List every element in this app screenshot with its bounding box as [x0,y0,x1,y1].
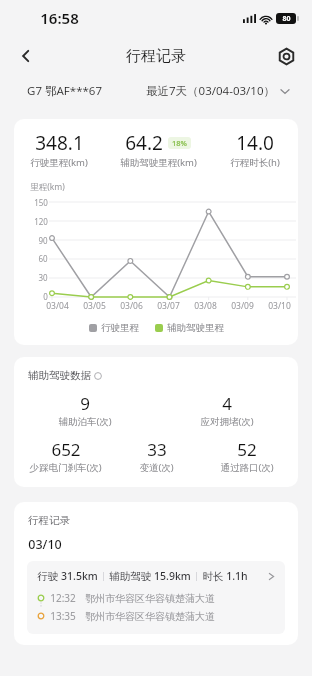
staticText: 30 [38,272,48,283]
staticText: 33 [147,438,167,461]
staticText: 辅助泊车(次) [58,415,112,428]
staticText: 03/09 [231,300,254,312]
button[interactable]: 最近7天（03/04-03/10） [146,83,290,99]
button[interactable]: Back [8,38,44,74]
staticText: 150 [34,197,48,208]
staticText: 60 [38,253,48,264]
staticText: 03/07 [157,300,180,312]
staticText: 03/10 [28,536,62,553]
staticText: 行驶 31.5km [37,569,98,583]
staticText: 最近7天（03/04-03/10） [146,83,275,99]
staticText: 里程(km) [30,181,65,193]
staticText: 0 [43,291,48,302]
staticText: 64.2 [125,130,163,156]
staticText: 时长 1.1h [202,569,248,583]
staticText: 52 [237,438,257,461]
staticText: 03/08 [194,300,217,312]
staticText: 变道(次) [139,461,174,474]
staticText: 鄂州市华容区华容镇楚蒲大道 [85,592,215,605]
staticText: 通过路口(次) [220,461,274,474]
staticText: 辅助驾驶里程 [167,322,224,334]
staticText: 辅助驾驶 15.9km [109,569,191,583]
staticText: 辅助驾驶里程(km) [120,156,197,169]
staticText: 辅助驾驶数据 [28,369,91,382]
staticText: 80 [282,14,291,24]
staticText: 03/04 [46,300,69,312]
staticText: 应对拥堵(次) [200,415,254,428]
staticText: 14.0 [236,130,274,156]
button[interactable]: 行驶 31.5km [27,561,285,634]
staticText: 4 [222,392,232,415]
staticText: 652 [51,438,81,461]
staticText: 120 [34,216,48,227]
staticText: 03/06 [120,300,143,312]
staticText: 16:58 [40,8,79,28]
staticText: 03/10 [268,300,291,312]
staticText: 90 [38,235,48,246]
staticText: 少踩电门刹车(次) [29,461,102,474]
staticText: 9 [80,392,90,415]
staticText: 行程时长(h) [230,156,280,169]
staticText: 18% [172,138,187,148]
staticText: 13:35 [50,609,76,623]
staticText: 鄂州市华容区华容镇楚蒲大道 [85,610,215,623]
staticText: 行驶里程(km) [30,156,88,169]
button[interactable]: Settings [269,39,303,73]
staticText: 行驶里程 [101,322,139,334]
staticText: 行程记录 [126,47,186,66]
staticText: 行程记录 [28,514,70,527]
staticText: 12:32 [50,591,76,605]
staticText: 03/05 [83,300,106,312]
staticText: 348.1 [35,130,84,156]
staticText: G7 鄂AF***67 [27,83,102,99]
